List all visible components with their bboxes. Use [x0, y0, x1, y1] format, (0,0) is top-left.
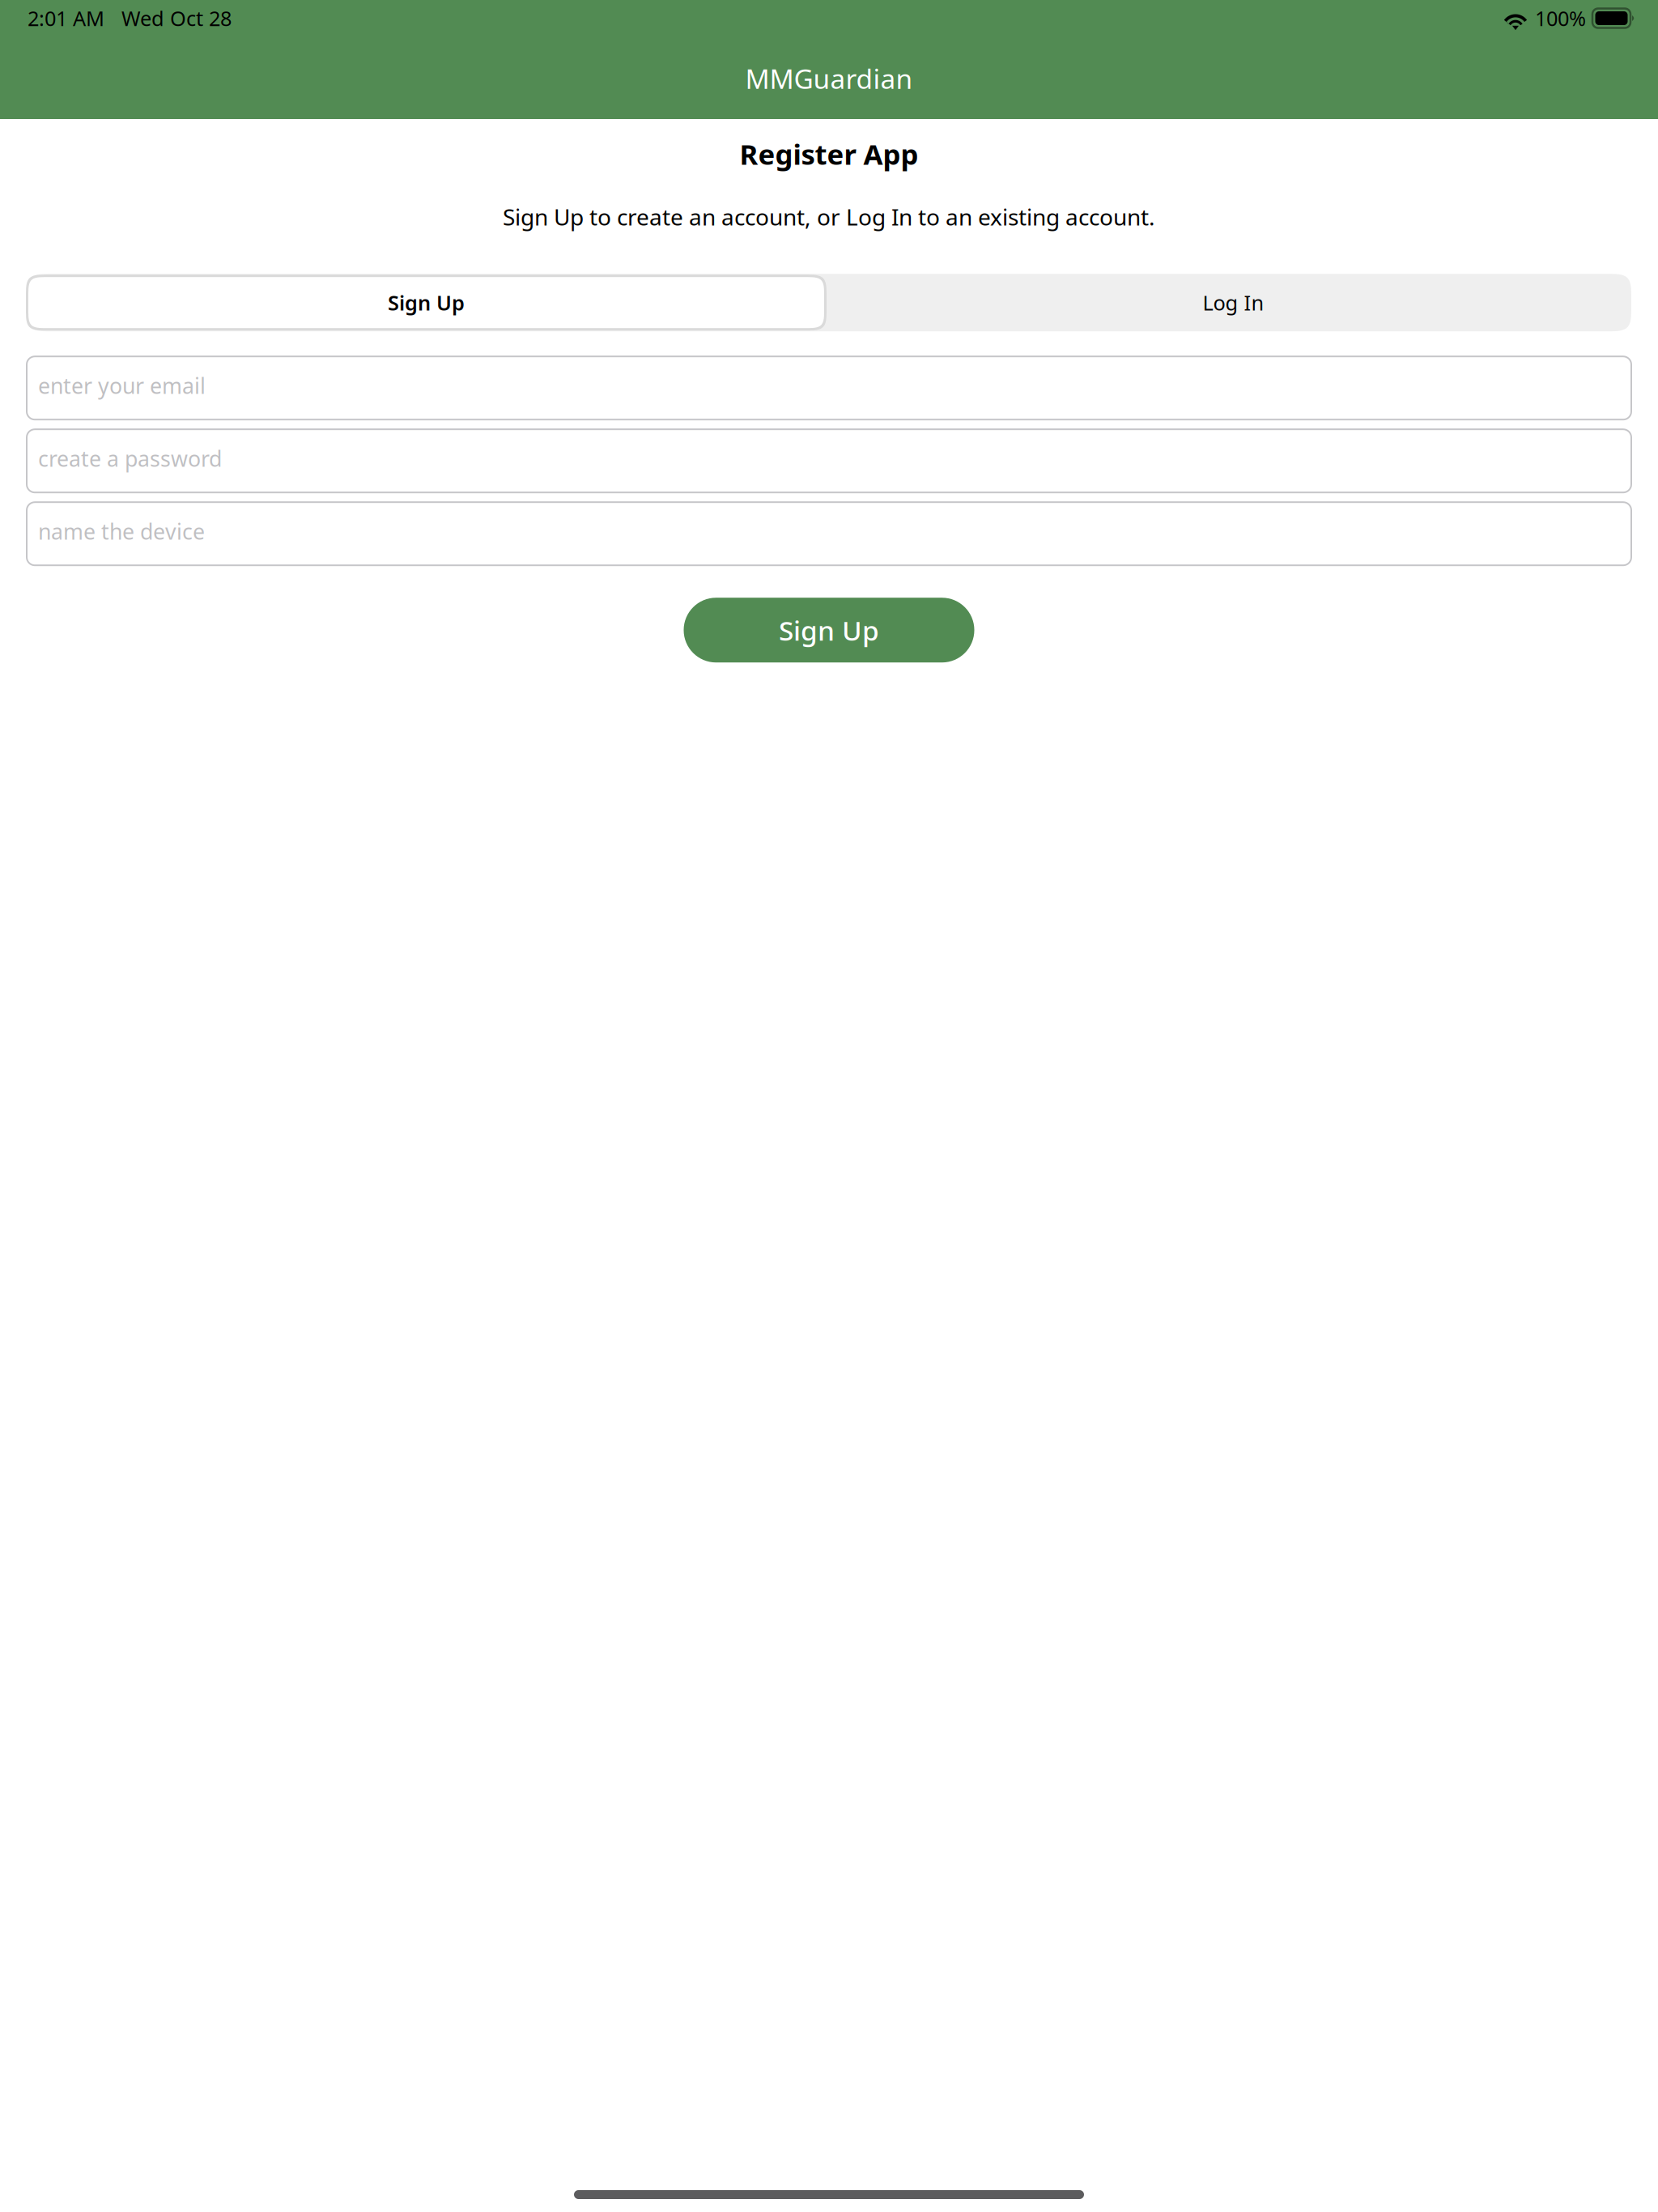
- staticText: Sign Up: [388, 289, 465, 316]
- staticText: Wed Oct 28: [121, 5, 232, 32]
- staticText: Register App: [740, 135, 918, 172]
- staticText: Sign Up to create an account, or Log In …: [503, 202, 1155, 232]
- staticText: Sign Up: [779, 612, 879, 648]
- button[interactable]: enter your email: [27, 356, 1631, 420]
- staticText: MMGuardian: [745, 60, 913, 96]
- staticText: create a password: [38, 444, 222, 473]
- button[interactable]: Sign Up: [25, 274, 827, 331]
- button[interactable]: Sign Up: [684, 598, 974, 662]
- staticText: enter your email: [38, 371, 206, 400]
- staticText: 100%: [1535, 5, 1586, 32]
- staticText: 2:01 AM: [28, 5, 104, 32]
- staticText: name the device: [38, 517, 205, 546]
- staticText: Log In: [1203, 289, 1264, 316]
- button[interactable]: Log In: [834, 277, 1633, 328]
- button[interactable]: create a password: [27, 429, 1631, 492]
- button[interactable]: name the device: [27, 502, 1631, 565]
